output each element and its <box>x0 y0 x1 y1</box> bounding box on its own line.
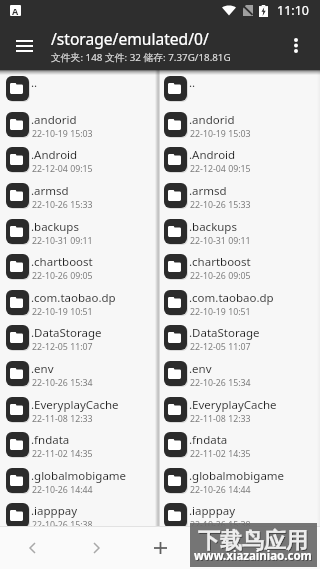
staticText: 下载鸟应用 <box>199 528 309 556</box>
staticText: 22-12-05 11:07 <box>32 341 93 353</box>
staticText: .andorid <box>189 112 235 128</box>
staticText: .EveryplayCache <box>31 397 119 413</box>
staticText: 22-10-26 09:05 <box>32 270 93 282</box>
button[interactable]: .armsd <box>0 183 158 219</box>
staticText: .backups <box>31 219 79 235</box>
staticText: .com.taobao.dp <box>189 290 274 306</box>
button[interactable]: .Android <box>158 147 320 183</box>
staticText: .fndata <box>189 432 228 448</box>
staticText: 22-11-02 14:35 <box>32 448 93 460</box>
staticText: 22-10-19 10:51 <box>190 306 251 318</box>
staticText: .globalmobigame <box>31 468 127 484</box>
button[interactable]: .iapppay <box>0 503 158 539</box>
button[interactable]: .EveryplayCache <box>0 397 158 433</box>
button[interactable]: .globalmobigame <box>158 468 320 504</box>
button[interactable]: .env <box>158 361 320 397</box>
staticText: 22-10-19 10:51 <box>32 306 93 318</box>
staticText: 22-12-04 09:15 <box>190 163 251 175</box>
staticText: 22-10-19 15:03 <box>32 128 93 140</box>
button[interactable]: .env <box>0 361 158 397</box>
staticText: 22-10-26 15:38 <box>190 519 251 531</box>
button[interactable]: .Android <box>0 147 158 183</box>
button[interactable]: .armsd <box>158 183 320 219</box>
button[interactable]: More options <box>279 29 312 62</box>
staticText: 下载鸟应用 <box>198 527 308 555</box>
staticText: 22-10-26 15:38 <box>32 519 93 531</box>
staticText: 22-10-26 14:44 <box>190 484 251 496</box>
button[interactable]: .globalmobigame <box>0 468 158 504</box>
staticText: 22-10-26 15:33 <box>190 199 251 211</box>
staticText: .armsd <box>31 183 69 199</box>
staticText: /storage/emulated/0/ <box>51 28 209 49</box>
staticText: 22-10-26 14:44 <box>32 484 93 496</box>
staticText: .com.taobao.dp <box>31 290 116 306</box>
staticText: .globalmobigame <box>189 468 285 484</box>
button[interactable]: .andorid <box>158 112 320 148</box>
staticText: .chartboost <box>31 254 93 270</box>
button[interactable]: .iapppay <box>158 503 320 539</box>
button[interactable]: .fndata <box>158 432 320 468</box>
button[interactable]: .andorid <box>0 112 158 148</box>
staticText: 22-11-08 12:33 <box>190 413 251 425</box>
staticText: 22-12-05 11:07 <box>190 341 251 353</box>
staticText: 22-10-31 09:11 <box>32 235 93 247</box>
staticText: www.xiazainiao.com <box>195 549 313 565</box>
button[interactable]: Forward <box>80 527 112 569</box>
staticText: .backups <box>189 219 237 235</box>
button[interactable]: .DataStorage <box>0 325 158 361</box>
staticText: A <box>12 5 19 16</box>
staticText: .andorid <box>31 112 77 128</box>
button[interactable]: .backups <box>158 219 320 255</box>
staticText: .Android <box>31 147 78 163</box>
button[interactable]: .chartboost <box>158 254 320 290</box>
staticText: 22-12-04 09:15 <box>32 163 93 175</box>
button[interactable]: .. <box>0 76 158 112</box>
staticText: 22-11-02 14:35 <box>190 448 251 460</box>
button[interactable]: Add <box>144 527 176 569</box>
staticText: .iapppay <box>189 503 236 519</box>
button[interactable]: .chartboost <box>0 254 158 290</box>
staticText: .env <box>189 361 212 377</box>
staticText: .DataStorage <box>189 325 260 341</box>
staticText: .. <box>31 75 38 91</box>
button[interactable]: .EveryplayCache <box>158 397 320 433</box>
button[interactable]: .backups <box>0 219 158 255</box>
staticText: .armsd <box>189 183 227 199</box>
staticText: 22-10-26 09:05 <box>190 270 251 282</box>
button[interactable]: Menu <box>8 29 41 62</box>
staticText: 11:10 <box>277 2 309 19</box>
staticText: www.xiazainiao.com <box>194 548 312 564</box>
staticText: .iapppay <box>31 503 78 519</box>
button[interactable]: .fndata <box>0 432 158 468</box>
staticText: .Android <box>189 147 236 163</box>
staticText: .fndata <box>31 432 70 448</box>
staticText: .chartboost <box>189 254 251 270</box>
button[interactable]: .com.taobao.dp <box>0 290 158 326</box>
staticText: .. <box>189 75 196 91</box>
staticText: .env <box>31 361 54 377</box>
staticText: 22-10-31 09:11 <box>190 235 251 247</box>
button[interactable]: .. <box>158 76 320 112</box>
staticText: 22-10-26 15:34 <box>190 377 251 389</box>
button[interactable]: .com.taobao.dp <box>158 290 320 326</box>
button[interactable]: Back <box>16 527 48 569</box>
staticText: .DataStorage <box>31 325 102 341</box>
staticText: 22-10-26 15:33 <box>32 199 93 211</box>
staticText: 22-10-26 15:34 <box>32 377 93 389</box>
staticText: 文件夹: 148 文件: 32 储存: 7.37G/18.81G <box>51 51 231 64</box>
staticText: 22-11-08 12:33 <box>32 413 93 425</box>
staticText: .EveryplayCache <box>189 397 277 413</box>
button[interactable]: .DataStorage <box>158 325 320 361</box>
staticText: 22-10-19 15:03 <box>190 128 251 140</box>
